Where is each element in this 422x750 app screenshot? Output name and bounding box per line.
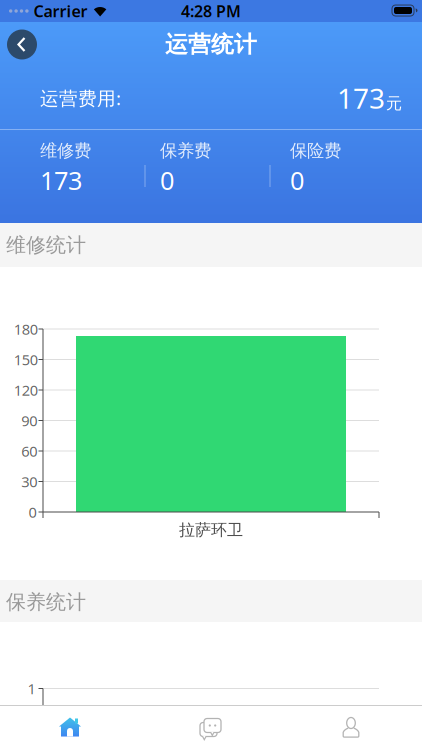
staticText: 90: [21, 411, 37, 430]
button[interactable]: [140, 705, 280, 750]
staticText: 0: [290, 163, 304, 197]
staticText: 30: [21, 472, 37, 491]
staticText: 维修统计: [6, 233, 86, 257]
staticText: 维修费: [40, 140, 91, 161]
staticText: 1: [27, 679, 35, 698]
staticText: 运营统计: [165, 31, 257, 58]
staticText: 173: [337, 79, 385, 117]
staticText: 60: [21, 441, 37, 461]
staticText: Carrier: [34, 0, 88, 22]
staticText: 0: [160, 163, 174, 197]
staticText: 元: [386, 94, 402, 113]
staticText: 173: [40, 163, 82, 197]
staticText: 120: [14, 380, 38, 400]
staticText: 150: [14, 350, 38, 369]
button[interactable]: [280, 705, 422, 750]
staticText: 4:28 PM: [181, 0, 241, 22]
staticText: 保险费: [290, 140, 341, 161]
staticText: 0: [29, 502, 37, 522]
staticText: 180: [14, 319, 38, 339]
staticText: 保养统计: [6, 590, 86, 614]
button[interactable]: [0, 705, 140, 750]
staticText: 拉萨环卫: [179, 520, 243, 540]
staticText: 保养费: [160, 140, 211, 161]
button[interactable]: [7, 29, 37, 59]
staticText: 运营费用:: [40, 86, 121, 110]
